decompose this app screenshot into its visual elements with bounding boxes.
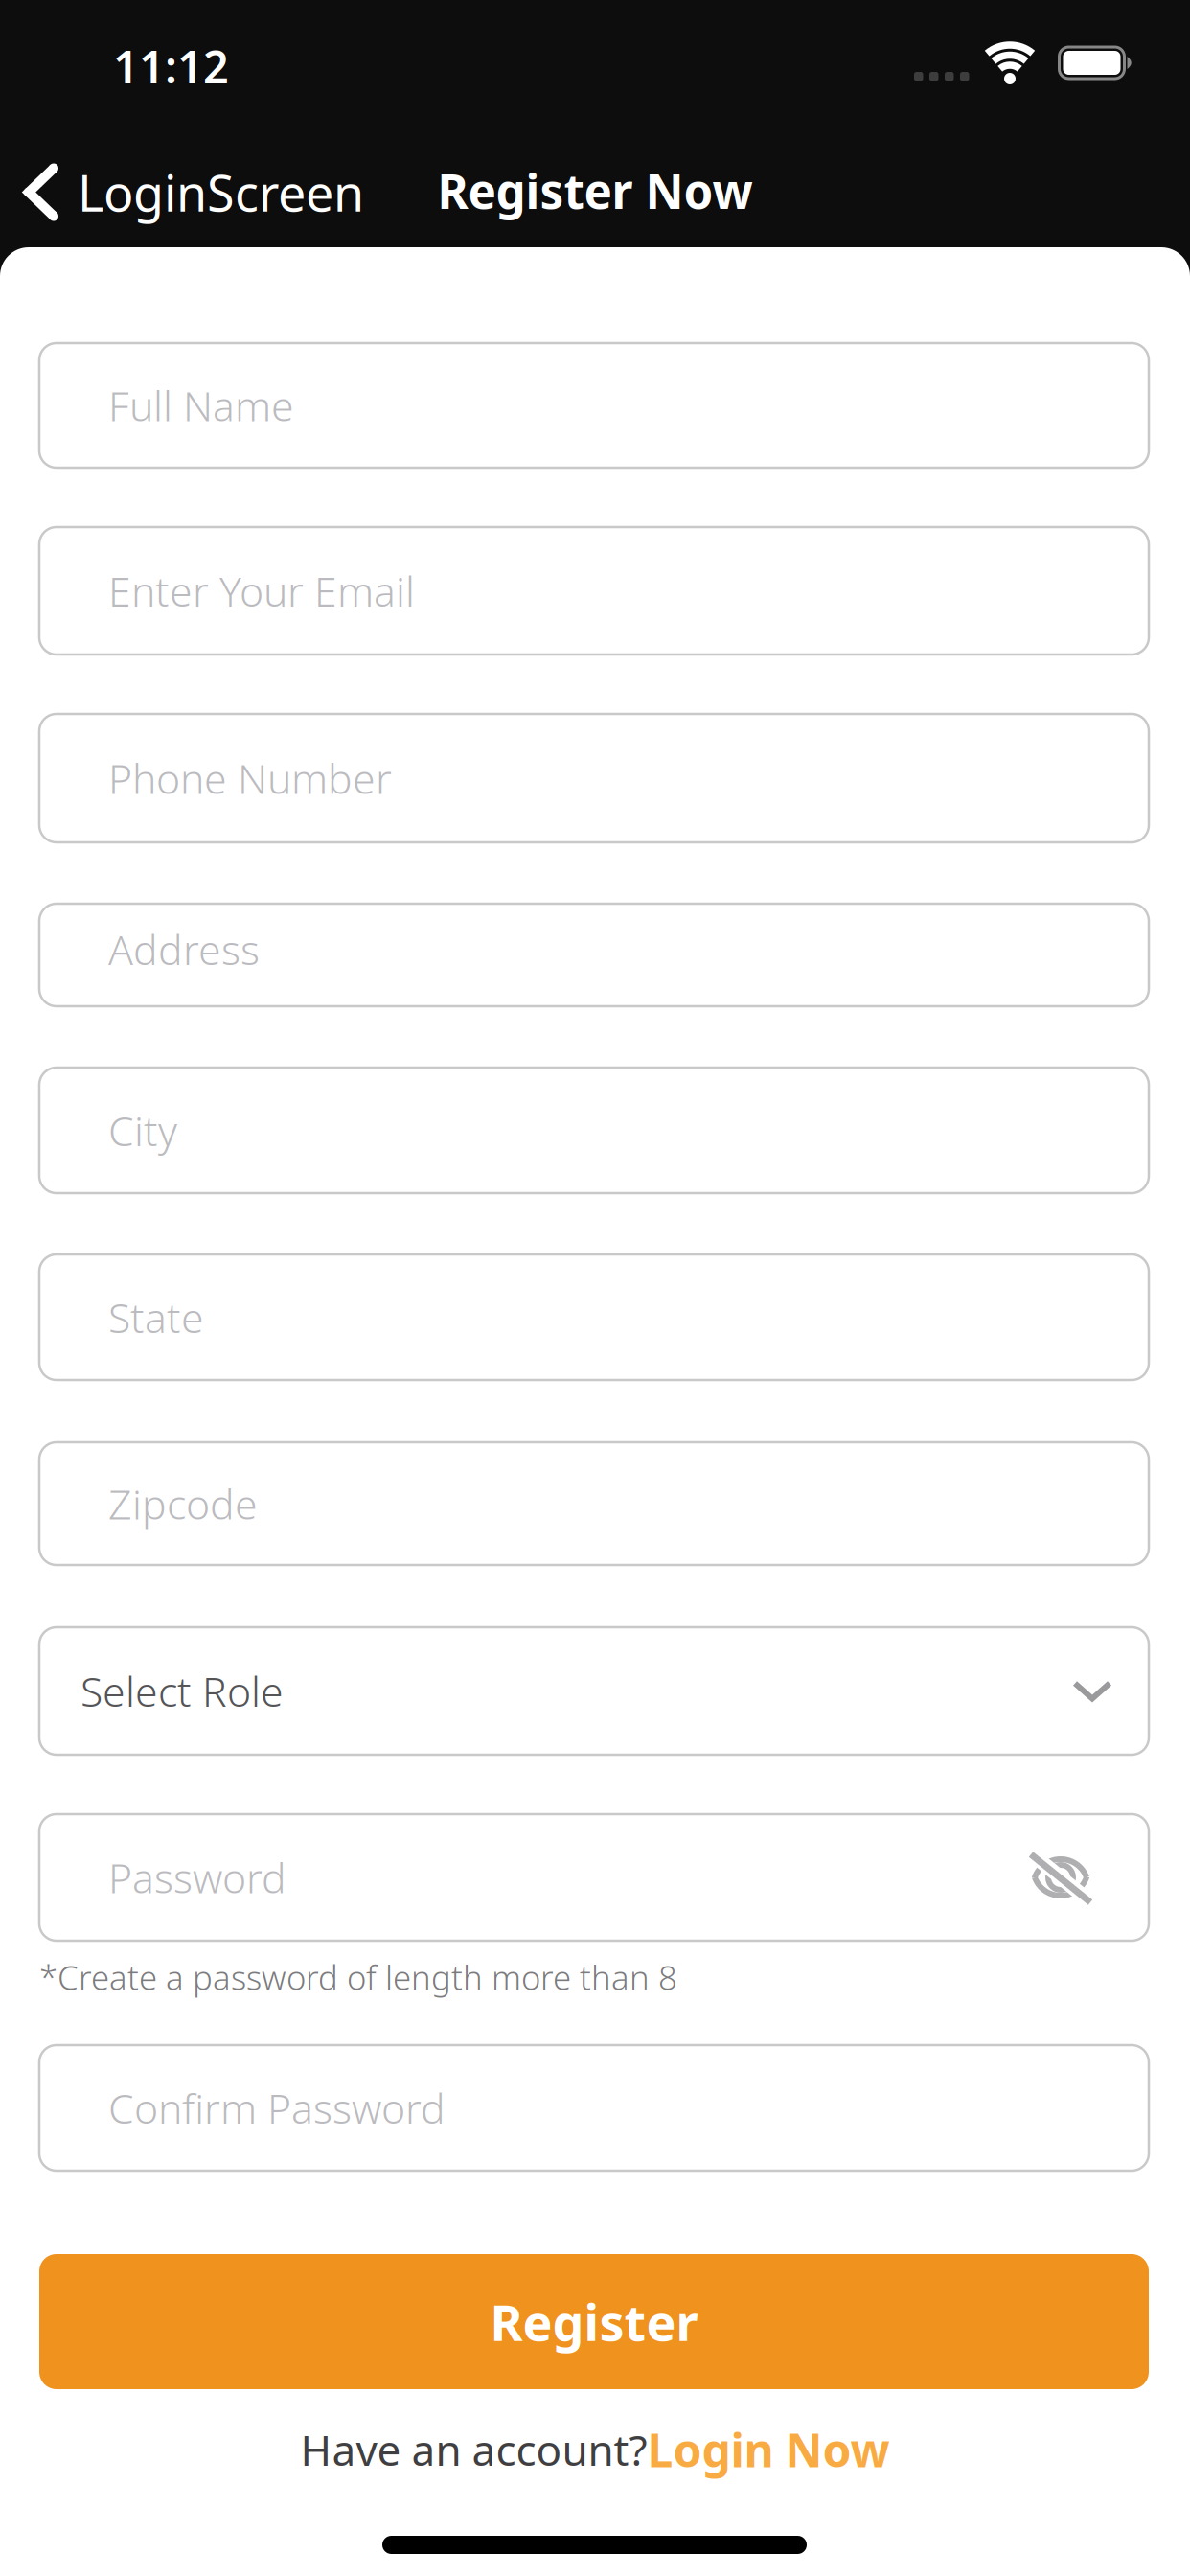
button[interactable]: State xyxy=(39,1254,1149,1380)
staticText: Full Name xyxy=(108,378,294,433)
button[interactable]: Select Role xyxy=(39,1627,1149,1755)
staticText: Have an account? xyxy=(300,2421,647,2477)
staticText: LoginScreen xyxy=(78,159,364,225)
button[interactable]: Phone Number xyxy=(39,714,1149,842)
staticText: City xyxy=(108,1103,177,1158)
button[interactable]: Zipcode xyxy=(39,1442,1149,1565)
button[interactable]: City xyxy=(39,1068,1149,1193)
button[interactable]: Address xyxy=(39,904,1149,1006)
staticText: Register Now xyxy=(437,159,753,222)
staticText: Password xyxy=(108,1850,286,1905)
button[interactable]: Enter Your Email xyxy=(39,527,1149,655)
staticText: Login Now xyxy=(647,2419,890,2480)
staticText: State xyxy=(108,1290,204,1344)
button[interactable]: Show password xyxy=(1028,1851,1093,1903)
button[interactable]: Password xyxy=(39,1814,1149,1941)
button[interactable]: Confirm Password xyxy=(39,2045,1149,2171)
staticText: Address xyxy=(108,922,260,976)
staticText: Enter Your Email xyxy=(108,564,415,618)
button[interactable]: Login Now xyxy=(647,2419,890,2480)
button[interactable]: Back xyxy=(22,159,364,225)
staticText: Select Role xyxy=(80,1664,284,1718)
staticText: Register xyxy=(490,2288,698,2355)
staticText: *Create a password of length more than 8 xyxy=(39,1955,677,1999)
staticText: Zipcode xyxy=(108,1477,258,1531)
staticText: Phone Number xyxy=(108,751,392,805)
button[interactable]: Full Name xyxy=(39,343,1149,468)
staticText: Confirm Password xyxy=(108,2081,446,2135)
button[interactable]: Register xyxy=(39,2254,1149,2389)
staticText: 11:12 xyxy=(113,36,229,96)
